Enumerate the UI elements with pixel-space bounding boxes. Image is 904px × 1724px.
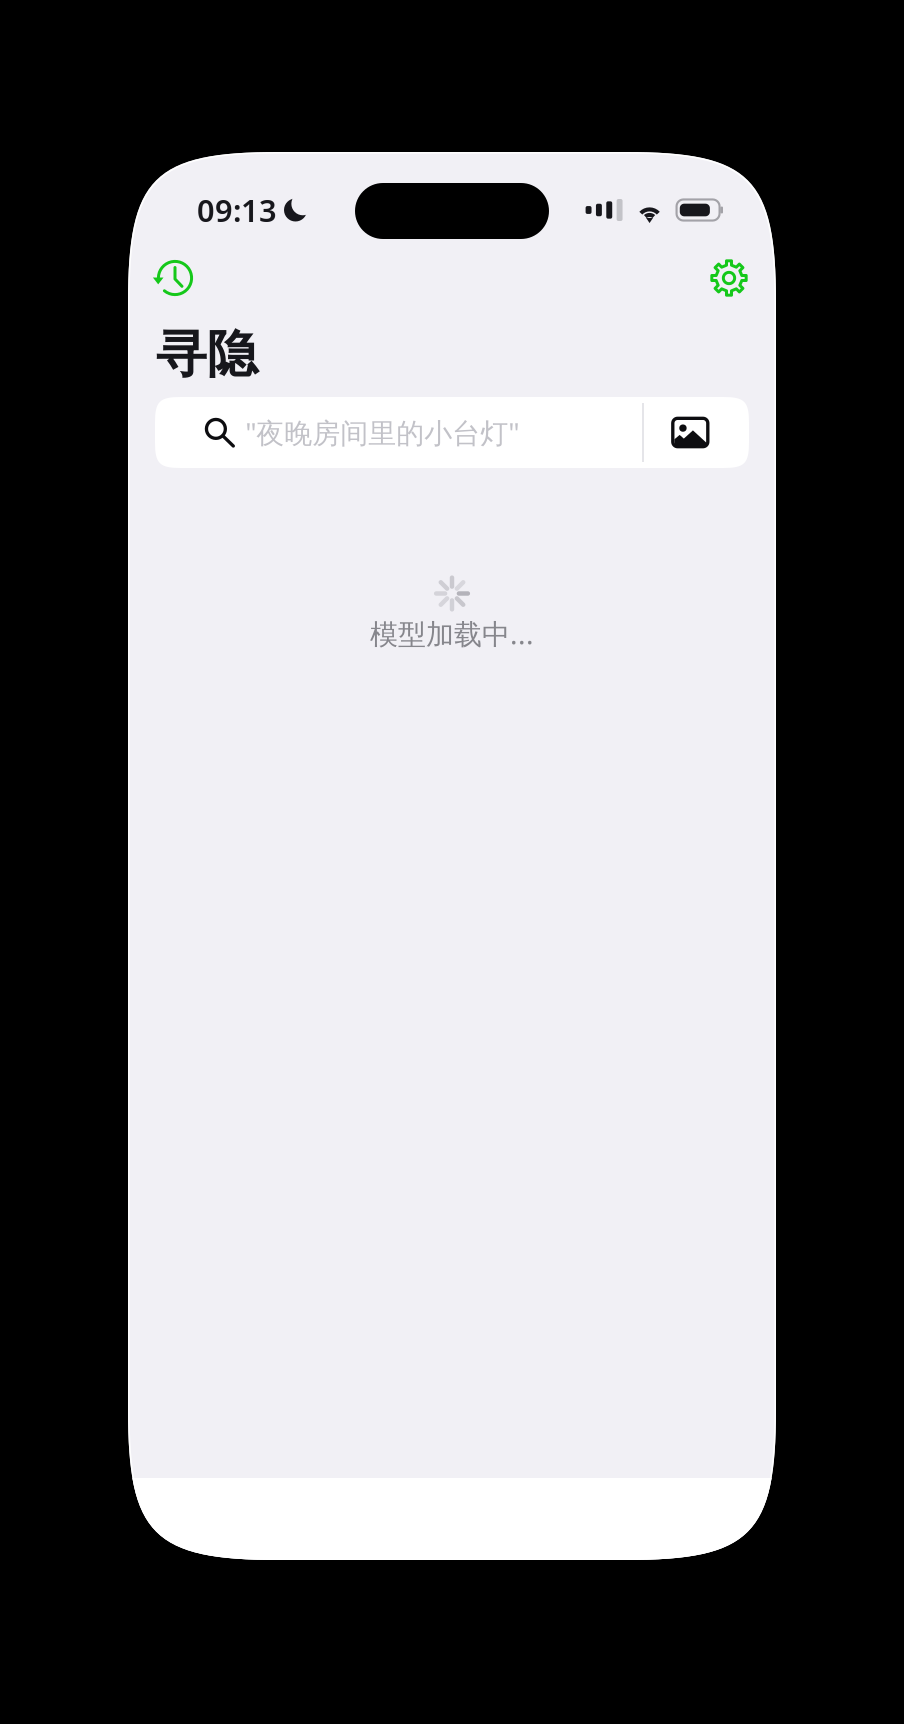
button[interactable]: History	[146, 249, 204, 307]
staticText: "夜晚房间里的小台灯"	[245, 414, 519, 451]
button[interactable]: Settings	[700, 249, 758, 307]
button[interactable]: Search by photo	[644, 397, 749, 468]
staticText: 模型加载中...	[370, 615, 534, 652]
staticText: 寻隐	[156, 323, 258, 386]
button[interactable]: "夜晚房间里的小台灯"	[155, 397, 642, 468]
staticText: 09:13	[197, 190, 277, 230]
